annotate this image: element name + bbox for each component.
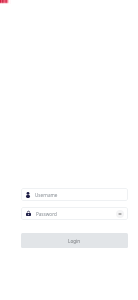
button[interactable]: Login xyxy=(21,233,128,248)
staticText: Username xyxy=(35,192,58,198)
staticText: Login xyxy=(68,238,81,244)
button[interactable]: Password xyxy=(21,207,128,220)
staticText: Password xyxy=(36,211,57,217)
button[interactable]: Username xyxy=(21,188,128,201)
button[interactable]: Show password xyxy=(115,209,125,219)
